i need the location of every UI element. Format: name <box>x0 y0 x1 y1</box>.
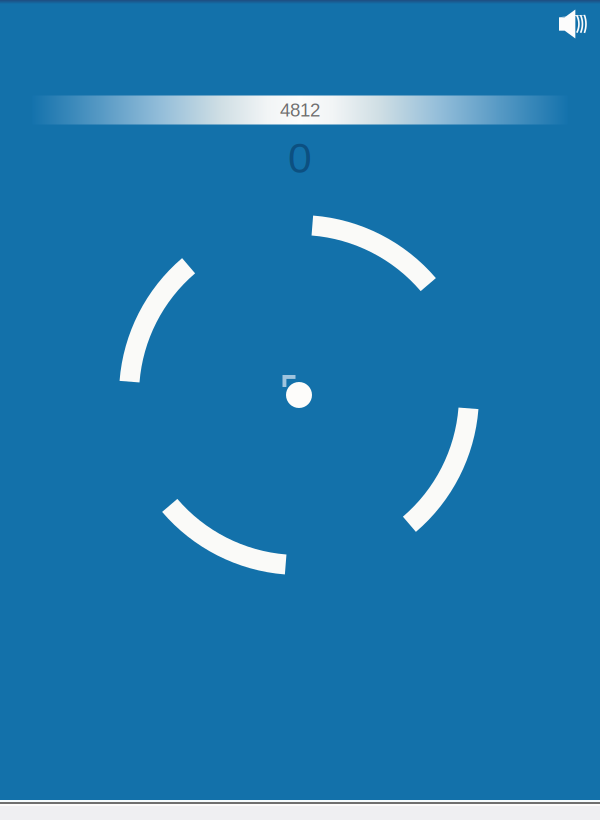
staticText: 0 <box>288 134 312 182</box>
staticText: 4812 <box>280 100 320 120</box>
button[interactable]: Sound <box>551 3 594 44</box>
